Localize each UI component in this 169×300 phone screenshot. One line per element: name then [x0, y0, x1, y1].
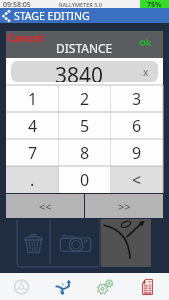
button[interactable]: Settings — [85, 273, 125, 300]
staticText: 5 — [80, 115, 90, 137]
staticText: 0 — [80, 169, 90, 191]
button[interactable]: 1 — [6, 85, 59, 112]
staticText: < — [132, 169, 142, 191]
staticText: STAGE EDITING — [14, 9, 90, 23]
staticText: 3840 — [55, 61, 104, 82]
staticText: 7 — [28, 142, 38, 164]
button[interactable]: 8 — [59, 139, 111, 166]
button[interactable]: < — [111, 166, 163, 193]
button[interactable]: >> — [85, 194, 163, 218]
button[interactable]: Documents — [125, 273, 169, 300]
staticText: 9 — [132, 142, 142, 164]
staticText: x — [143, 65, 149, 79]
button[interactable]: 5 — [59, 112, 111, 139]
button[interactable]: Delete — [17, 219, 50, 267]
button[interactable]: 7 — [6, 139, 59, 166]
button[interactable]: 3 — [111, 85, 163, 112]
button[interactable]: Ok — [139, 36, 152, 48]
staticText: DISTANCE — [56, 40, 113, 56]
staticText: 1 — [28, 88, 38, 110]
button[interactable]: Cancel — [7, 30, 44, 45]
staticText: << — [39, 199, 52, 214]
button[interactable]: 4 — [6, 112, 59, 139]
button[interactable]: 0 — [59, 166, 111, 193]
staticText: 75% — [147, 0, 162, 8]
button[interactable]: Route editing — [101, 219, 151, 267]
button[interactable]: 9 — [111, 139, 163, 166]
button[interactable]: << — [6, 194, 84, 218]
staticText: 09:58:05 — [3, 0, 31, 8]
staticText: 8 — [80, 142, 90, 164]
staticText: 3 — [132, 88, 142, 110]
staticText: RALLYMETER 5.0 — [59, 1, 102, 8]
staticText: >> — [118, 199, 131, 214]
button[interactable]: 6 — [111, 112, 163, 139]
button[interactable]: Vehicle — [0, 273, 43, 300]
button[interactable]: 2 — [59, 85, 111, 112]
button[interactable]: Camera — [50, 219, 101, 267]
staticText: 2 — [80, 88, 90, 110]
button[interactable]: . — [6, 166, 59, 193]
button[interactable]: Route — [43, 273, 85, 300]
staticText: 4 — [28, 115, 38, 137]
staticText: 6 — [132, 115, 142, 137]
button[interactable]: Back — [0, 9, 14, 23]
button[interactable]: 3840 — [11, 61, 158, 82]
staticText: . — [30, 169, 35, 191]
